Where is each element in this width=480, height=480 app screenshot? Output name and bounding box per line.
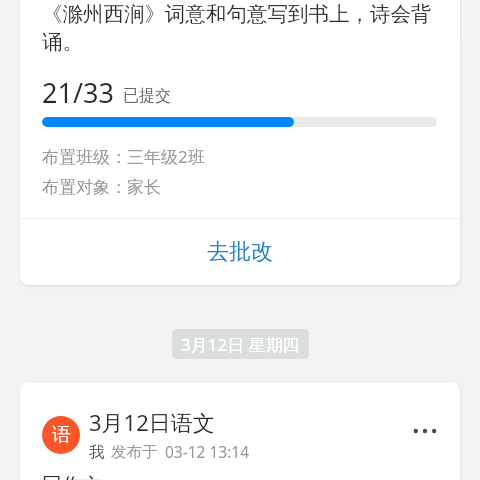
button[interactable]: More options	[408, 414, 442, 448]
button[interactable]: 3月12日 星期四	[172, 329, 309, 359]
staticText: 已提交	[123, 86, 171, 106]
staticText: 去批改	[207, 238, 273, 266]
staticText: 布置班级：三年级2班	[42, 145, 205, 168]
staticText: 3月12日语文	[89, 407, 215, 437]
staticText: 《滁州西涧》词意和句意写到书上，诗会背诵。	[42, 1, 448, 55]
staticText: 21/33	[42, 74, 114, 111]
button[interactable]: 《滁州西涧》词意和句意写到书上，诗会背诵。	[20, 0, 460, 285]
staticText: 3月12日 星期四	[181, 333, 300, 356]
staticText: 语	[52, 423, 71, 447]
button[interactable]: 去批改	[20, 219, 460, 285]
staticText: 03-12 13:14	[165, 441, 250, 462]
staticText: 发布于	[111, 442, 158, 462]
staticText: 我	[89, 442, 105, 462]
staticText: 回作文	[42, 473, 102, 480]
button[interactable]: 语	[20, 383, 460, 480]
staticText: 布置对象：家长	[42, 177, 161, 198]
